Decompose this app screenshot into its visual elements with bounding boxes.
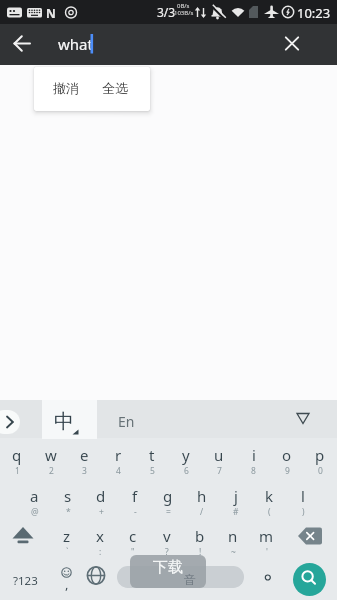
staticText: b xyxy=(195,526,205,546)
staticText: ~ xyxy=(231,546,236,558)
staticText: d xyxy=(96,486,106,506)
staticText: 6 xyxy=(184,465,189,477)
button[interactable] xyxy=(92,67,150,111)
staticText: n xyxy=(228,526,238,546)
staticText: / xyxy=(200,506,204,518)
staticText: j xyxy=(234,486,238,506)
staticText: x xyxy=(96,526,104,546)
staticText: w xyxy=(45,445,57,465)
staticText: a xyxy=(30,486,39,506)
button[interactable]: g xyxy=(151,479,185,520)
staticText: ? xyxy=(165,546,169,558)
staticText: i xyxy=(252,445,256,465)
button[interactable]: x xyxy=(83,519,117,560)
staticText: what xyxy=(58,34,93,54)
button[interactable]: o xyxy=(270,438,304,479)
staticText: s xyxy=(64,486,72,506)
button[interactable]: i xyxy=(236,438,270,479)
staticText: N xyxy=(46,5,56,21)
staticText: + xyxy=(99,506,104,518)
staticText: 音 xyxy=(184,572,196,587)
staticText: 5 xyxy=(150,465,155,477)
staticText: ?123 xyxy=(13,573,38,589)
staticText: En xyxy=(118,412,135,431)
button[interactable]: w xyxy=(34,438,68,479)
staticText: ' xyxy=(266,546,268,558)
staticText: 0 xyxy=(318,465,323,477)
button[interactable] xyxy=(49,560,83,600)
button[interactable]: t xyxy=(135,438,169,479)
button[interactable] xyxy=(290,519,337,560)
staticText: ! xyxy=(199,546,202,558)
staticText: ` xyxy=(66,546,69,558)
button[interactable] xyxy=(253,560,283,600)
staticText: c xyxy=(129,526,137,546)
button[interactable] xyxy=(284,400,324,438)
button[interactable]: f xyxy=(118,479,152,520)
staticText: 2 xyxy=(49,465,54,477)
staticText: h xyxy=(197,486,207,506)
staticText: ) xyxy=(302,506,305,518)
staticText: # xyxy=(233,506,239,518)
button[interactable] xyxy=(117,566,244,588)
staticText: 全选 xyxy=(102,80,128,96)
button[interactable]: h xyxy=(185,479,219,520)
button[interactable]: k xyxy=(252,479,286,520)
button[interactable]: s xyxy=(51,479,85,520)
staticText: g xyxy=(163,486,173,506)
button[interactable]: d xyxy=(84,479,118,520)
button[interactable]: a xyxy=(17,479,51,520)
button[interactable]: v xyxy=(150,519,184,560)
staticText: 下载 xyxy=(153,558,183,577)
staticText: @ xyxy=(31,506,39,518)
staticText: , xyxy=(65,575,69,593)
staticText: 3 xyxy=(82,465,87,477)
button[interactable]: l xyxy=(286,479,320,520)
staticText: r xyxy=(115,445,122,465)
button[interactable]: j xyxy=(219,479,253,520)
staticText: e xyxy=(80,445,89,465)
button[interactable] xyxy=(130,555,206,588)
staticText: 撤消 xyxy=(53,80,79,96)
staticText: 7 xyxy=(217,465,222,477)
button[interactable] xyxy=(83,560,113,600)
button[interactable]: u xyxy=(202,438,236,479)
button[interactable] xyxy=(34,67,92,111)
staticText: * xyxy=(66,506,71,518)
staticText: 9 xyxy=(285,465,290,477)
button[interactable] xyxy=(0,519,47,560)
button[interactable] xyxy=(276,28,310,62)
staticText: m xyxy=(259,526,274,546)
staticText: o xyxy=(282,445,292,465)
button[interactable]: e xyxy=(67,438,101,479)
button[interactable]: ?123 xyxy=(2,560,49,600)
button[interactable]: q xyxy=(0,438,34,479)
button[interactable] xyxy=(0,410,20,434)
button[interactable] xyxy=(6,28,40,62)
button[interactable]: b xyxy=(183,519,217,560)
button[interactable]: c xyxy=(116,519,150,560)
staticText: 10:23 xyxy=(297,4,331,22)
button[interactable]: y xyxy=(169,438,203,479)
staticText: u xyxy=(214,445,224,465)
staticText: t xyxy=(149,445,155,465)
button[interactable] xyxy=(100,400,155,438)
staticText: = xyxy=(166,506,171,518)
button[interactable]: m xyxy=(249,519,283,560)
button[interactable] xyxy=(42,400,97,439)
staticText: 4 xyxy=(116,465,121,477)
button[interactable]: r xyxy=(101,438,135,479)
staticText: k xyxy=(265,486,274,506)
staticText: 103B/s xyxy=(174,9,194,17)
button[interactable]: z xyxy=(50,519,84,560)
button[interactable]: p xyxy=(303,438,337,479)
staticText: p xyxy=(315,445,325,465)
staticText: : xyxy=(99,546,102,558)
button[interactable]: n xyxy=(216,519,250,560)
staticText: 中 xyxy=(54,409,74,434)
staticText: z xyxy=(63,526,71,546)
button[interactable] xyxy=(293,563,326,596)
staticText: " xyxy=(131,546,135,558)
staticText: 8 xyxy=(251,465,256,477)
staticText: l xyxy=(301,486,305,506)
